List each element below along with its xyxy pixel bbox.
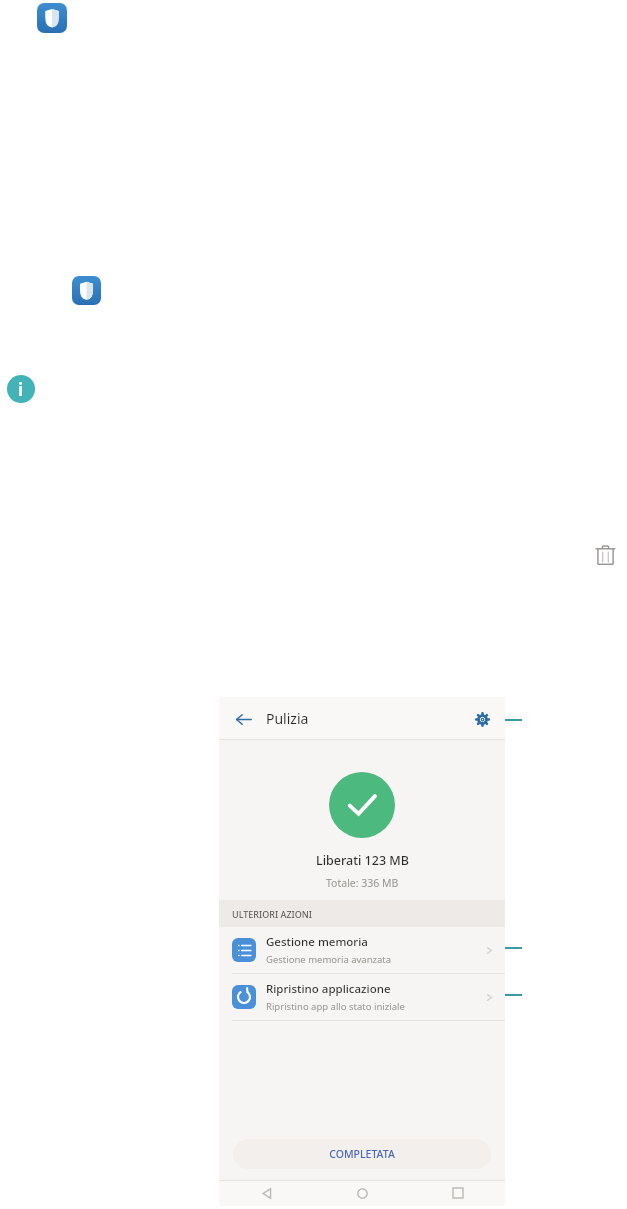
staticText: ULTERIORI AZIONI — [232, 908, 312, 920]
button[interactable]: Back — [232, 708, 254, 730]
staticText: Ripristino app allo stato iniziale — [266, 1000, 405, 1013]
staticText: Gestione memoria — [266, 934, 368, 950]
staticText: i — [18, 378, 24, 401]
staticText: Gestione memoria avanzata — [266, 953, 392, 966]
button[interactable]: Home — [315, 1180, 410, 1206]
button[interactable]: Settings — [472, 709, 492, 729]
button[interactable]: Gestione memoria — [219, 927, 505, 973]
staticText: Ripristino applicazione — [266, 981, 391, 997]
button[interactable]: Back — [219, 1180, 315, 1206]
staticText: Totale: 336 MB — [326, 876, 399, 890]
staticText: Liberati 123 MB — [316, 852, 409, 869]
staticText: Pulizia — [266, 709, 309, 728]
button[interactable]: COMPLETATA — [233, 1139, 491, 1169]
button[interactable]: Ripristino applicazione — [219, 974, 505, 1020]
other: Info — [7, 375, 35, 403]
staticText: COMPLETATA — [329, 1147, 395, 1161]
button[interactable]: Recents — [410, 1180, 505, 1206]
